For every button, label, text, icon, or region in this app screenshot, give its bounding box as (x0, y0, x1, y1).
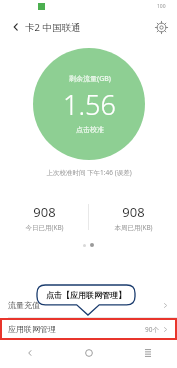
staticText: 卡2 中国联通 (25, 21, 81, 34)
button[interactable]: 流量充值 (0, 293, 177, 317)
staticText: 应用联网管理 (8, 324, 56, 334)
button[interactable]: Back (7, 18, 25, 36)
button[interactable]: Back (0, 340, 59, 366)
staticText: 908 (122, 203, 145, 221)
staticText: 流量充值 (8, 300, 40, 310)
staticText: 剩余流量(GB) (69, 74, 111, 84)
button[interactable]: 908 (0, 203, 88, 232)
button[interactable]: Recents (118, 340, 177, 366)
staticText: 点击【应用联网管理】 (46, 290, 126, 300)
staticText: 90个 (145, 325, 159, 334)
staticText: 908 (33, 203, 56, 221)
button[interactable]: 908 (89, 203, 177, 232)
staticText: 1.56 (63, 86, 116, 123)
button[interactable]: Home (59, 340, 118, 366)
staticText: 上次校准时间 下午1:46 (误差) (46, 168, 132, 177)
staticText: 点击校准 (76, 125, 104, 134)
button[interactable]: 剩余流量(GB) (33, 48, 145, 160)
staticText: 本周已用(KB) (114, 223, 153, 232)
button[interactable]: Settings (152, 18, 170, 36)
button[interactable]: 应用联网管理 (0, 318, 177, 340)
staticText: 100 (157, 3, 166, 10)
staticText: 今日已用(KB) (25, 223, 64, 232)
